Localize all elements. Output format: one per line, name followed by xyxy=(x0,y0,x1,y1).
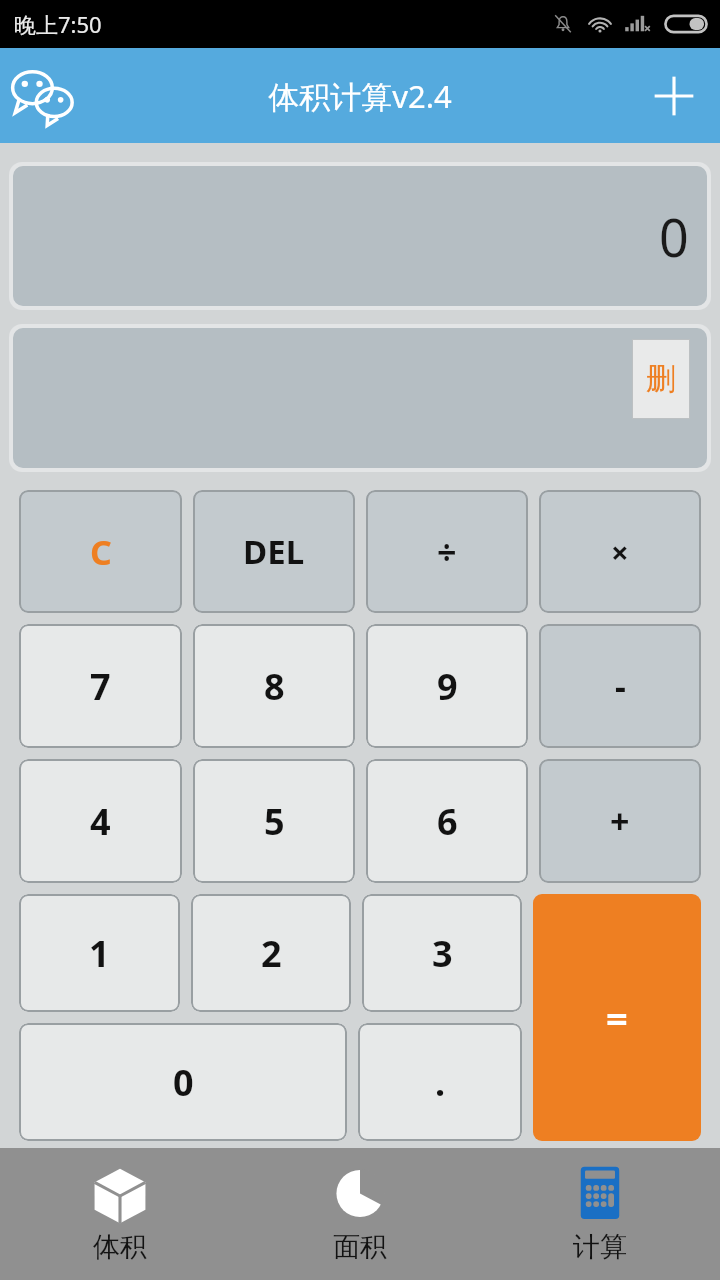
staticText: 6 xyxy=(437,797,458,846)
staticText: DEL xyxy=(243,529,305,574)
button[interactable]: - xyxy=(539,624,701,748)
staticText: 1 xyxy=(89,929,110,978)
button[interactable]: C xyxy=(19,490,182,613)
staticText: = xyxy=(606,992,628,1044)
button[interactable]: × xyxy=(539,490,701,613)
button[interactable]: 5 xyxy=(193,759,355,883)
button[interactable]: 面积 xyxy=(240,1148,480,1280)
button[interactable]: 删 xyxy=(632,339,690,419)
staticText: 2 xyxy=(261,929,282,978)
button[interactable]: 3 xyxy=(362,894,522,1012)
button[interactable]: 4 xyxy=(19,759,182,883)
button[interactable]: = xyxy=(533,894,701,1141)
button[interactable]: + xyxy=(539,759,701,883)
button[interactable]: 体积 xyxy=(0,1148,240,1280)
staticText: 体积计算v2.4 xyxy=(268,75,452,117)
button[interactable]: 计算 xyxy=(480,1148,720,1280)
button[interactable]: Add xyxy=(644,66,704,126)
staticText: 删 xyxy=(646,360,676,398)
staticText: 8 xyxy=(264,662,285,711)
staticText: - xyxy=(615,663,626,709)
button[interactable]: . xyxy=(358,1023,522,1141)
staticText: . xyxy=(435,1058,446,1107)
staticText: ÷ xyxy=(437,529,457,575)
button[interactable]: 9 xyxy=(366,624,528,748)
staticText: 5 xyxy=(264,797,285,846)
staticText: 7 xyxy=(90,662,111,711)
button[interactable]: 0 xyxy=(19,1023,347,1141)
staticText: × xyxy=(611,531,629,573)
button[interactable]: 8 xyxy=(193,624,355,748)
staticText: 3 xyxy=(432,929,453,978)
button[interactable]: 2 xyxy=(191,894,351,1012)
staticText: 晚上7:50 xyxy=(14,9,102,39)
button[interactable]: DEL xyxy=(193,490,355,613)
button[interactable]: WeChat xyxy=(4,56,84,136)
staticText: 0 xyxy=(173,1058,194,1107)
staticText: 面积 xyxy=(333,1230,387,1264)
staticText: 4 xyxy=(90,797,111,846)
staticText: 9 xyxy=(437,662,458,711)
button[interactable]: ÷ xyxy=(366,490,528,613)
button[interactable]: 7 xyxy=(19,624,182,748)
staticText: 0 xyxy=(659,201,689,272)
button[interactable]: 1 xyxy=(19,894,180,1012)
staticText: C xyxy=(90,529,112,575)
staticText: + xyxy=(610,798,630,844)
button[interactable]: 6 xyxy=(366,759,528,883)
staticText: 计算 xyxy=(573,1230,627,1264)
staticText: 体积 xyxy=(93,1230,147,1264)
